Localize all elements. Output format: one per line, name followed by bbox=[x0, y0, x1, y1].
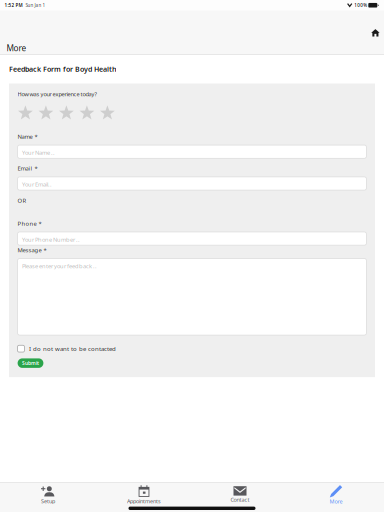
staticText: Message * bbox=[18, 246, 47, 254]
button[interactable]: Setup bbox=[0, 483, 96, 504]
button[interactable]: Rate experience bbox=[79, 105, 95, 121]
button[interactable]: Rate experience bbox=[100, 105, 115, 121]
staticText: 100% bbox=[352, 2, 368, 8]
staticText: Feedback Form for Boyd Health bbox=[9, 64, 117, 74]
staticText: Your Email.. bbox=[22, 180, 52, 188]
staticText: Setup bbox=[41, 497, 55, 505]
button[interactable]: More bbox=[288, 483, 384, 504]
staticText: More bbox=[6, 42, 26, 54]
staticText: Phone * bbox=[18, 219, 42, 227]
staticText: More bbox=[329, 498, 342, 505]
staticText: How was your experience today? bbox=[18, 90, 97, 98]
staticText: 1:52 PM bbox=[4, 2, 22, 8]
button[interactable]: Home bbox=[367, 25, 384, 40]
staticText: Name * bbox=[18, 133, 38, 141]
staticText: OR bbox=[18, 196, 27, 204]
button[interactable]: Rate experience bbox=[18, 105, 33, 121]
staticText: Sun Jan 1 bbox=[22, 2, 45, 8]
button[interactable]: I do not want to be contacted bbox=[18, 345, 366, 353]
staticText: Contact bbox=[230, 496, 249, 503]
staticText: Appointments bbox=[127, 497, 161, 505]
button[interactable]: Contact bbox=[192, 483, 288, 504]
button[interactable]: Submit bbox=[18, 358, 43, 368]
staticText: Email * bbox=[18, 164, 38, 172]
staticText: Please enter your feedback .. bbox=[22, 262, 97, 270]
staticText: Submit bbox=[22, 360, 39, 366]
button[interactable]: Rate experience bbox=[59, 105, 74, 121]
staticText: Your Name .. bbox=[22, 149, 55, 156]
button[interactable]: Appointments bbox=[96, 483, 192, 504]
staticText: I do not want to be contacted bbox=[29, 345, 116, 353]
button[interactable]: Rate experience bbox=[38, 105, 54, 121]
staticText: Your Phone Number .. bbox=[22, 235, 80, 243]
